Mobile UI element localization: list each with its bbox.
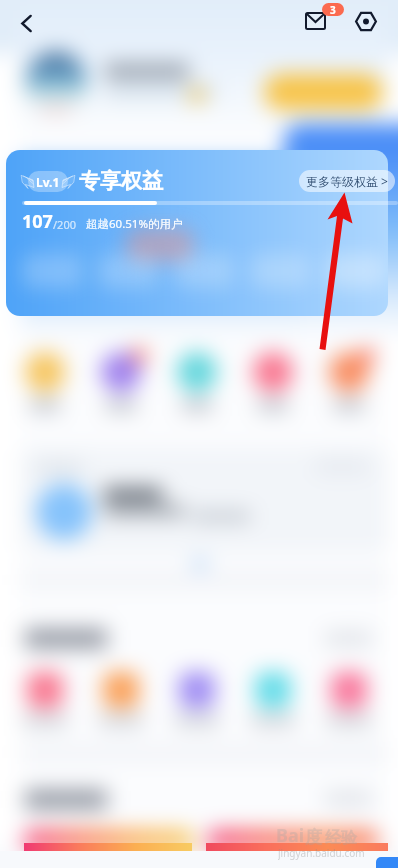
button[interactable]: Messages (299, 5, 331, 37)
staticText: /200 (53, 217, 76, 232)
button[interactable] (6, 150, 388, 316)
staticText: 度 (305, 827, 322, 848)
staticText: 超越60.51%的用户 (86, 216, 183, 232)
staticText: 更多等级权益 > (306, 173, 388, 189)
staticText: jingyan.baidu.com (278, 846, 365, 860)
button[interactable]: Settings (349, 4, 383, 38)
button[interactable]: 更多等级权益 > (299, 170, 395, 192)
staticText: 经验 (325, 828, 357, 848)
staticText: 3 (330, 3, 336, 16)
staticText: 107 (22, 209, 53, 234)
button[interactable]: Back (9, 6, 43, 40)
staticText: Lv.1 (36, 174, 60, 190)
staticText: 专享权益 (79, 168, 163, 194)
staticText: Bai (276, 823, 305, 848)
